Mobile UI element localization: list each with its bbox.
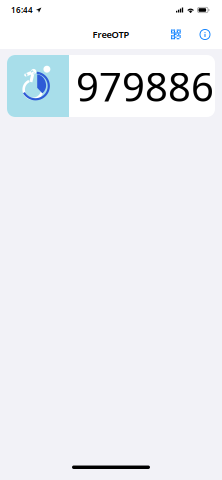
button[interactable]: Scan QR code <box>164 21 188 47</box>
staticText: 16:44 <box>11 5 33 15</box>
button[interactable]: 979886 <box>7 55 215 117</box>
staticText: 979886 <box>76 59 214 112</box>
button[interactable]: Information <box>193 21 217 47</box>
staticText: FreeOTP <box>92 28 129 41</box>
